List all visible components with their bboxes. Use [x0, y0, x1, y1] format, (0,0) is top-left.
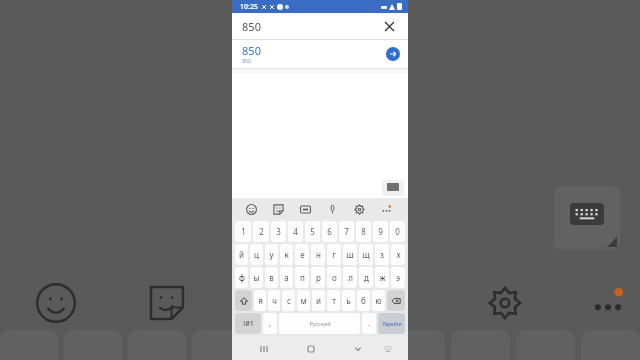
button[interactable]: .	[362, 313, 376, 334]
button[interactable]: 5	[305, 221, 320, 242]
button[interactable]: GIF	[292, 198, 319, 220]
staticText: 3	[276, 226, 281, 237]
staticText: 2	[259, 226, 264, 237]
staticText: л	[348, 272, 353, 283]
button[interactable]: Backspace	[387, 290, 405, 311]
button[interactable]: ь	[342, 290, 355, 311]
button[interactable]: ф	[235, 267, 248, 288]
button[interactable]: Stickers	[265, 198, 292, 220]
button[interactable]: т	[327, 290, 340, 311]
button[interactable]: More options	[373, 198, 400, 220]
staticText: ы	[253, 272, 260, 283]
button[interactable]: Search	[386, 47, 400, 61]
staticText: 10:25	[240, 2, 258, 12]
button[interactable]: ч	[268, 290, 280, 311]
staticText: з	[380, 249, 384, 260]
button[interactable]: 7	[339, 221, 354, 242]
staticText: Перейти	[382, 321, 402, 327]
button[interactable]: й	[235, 244, 248, 265]
staticText: 5	[310, 226, 315, 237]
button[interactable]: ж	[375, 267, 389, 288]
button[interactable]: ц	[250, 244, 263, 265]
staticText: н	[316, 249, 321, 260]
button[interactable]: 850	[242, 13, 398, 39]
button[interactable]: э	[391, 267, 405, 288]
button[interactable]: ы	[250, 267, 263, 288]
staticText: я	[258, 295, 263, 306]
button[interactable]: 0	[390, 221, 405, 242]
staticText: к	[284, 249, 289, 260]
button[interactable]: щ	[359, 244, 373, 265]
button[interactable]: Settings	[346, 198, 373, 220]
button[interactable]: х	[391, 244, 405, 265]
staticText: 850	[242, 19, 261, 34]
button[interactable]: в	[265, 267, 278, 288]
button[interactable]: о	[327, 267, 341, 288]
button[interactable]: 850	[242, 40, 400, 68]
button[interactable]: Clear	[380, 17, 398, 35]
staticText: !#1	[243, 319, 254, 329]
button[interactable]: Shift	[235, 290, 252, 311]
button[interactable]: Home	[301, 339, 321, 359]
button[interactable]: 2	[253, 221, 269, 242]
staticText: 850	[242, 43, 261, 58]
button[interactable]: и	[312, 290, 325, 311]
button[interactable]: н	[311, 244, 325, 265]
staticText: 6	[327, 226, 332, 237]
button[interactable]: !#1	[235, 313, 261, 334]
staticText: 1	[241, 226, 246, 237]
button[interactable]: п	[295, 267, 309, 288]
staticText: щ	[362, 249, 370, 260]
staticText: м	[300, 295, 307, 306]
button[interactable]: е	[295, 244, 309, 265]
button[interactable]: ,	[263, 313, 277, 334]
staticText: 8	[361, 226, 366, 237]
staticText: ш	[346, 249, 354, 260]
button[interactable]: 8	[356, 221, 371, 242]
button[interactable]: у	[265, 244, 278, 265]
staticText: 850	[242, 58, 251, 65]
staticText: ю	[375, 295, 382, 306]
button[interactable]: 3	[271, 221, 286, 242]
button[interactable]: б	[357, 290, 370, 311]
button[interactable]: Русский	[279, 313, 360, 334]
button[interactable]: Emoji	[238, 198, 265, 220]
staticText: 9	[378, 226, 383, 237]
button[interactable]: Recents	[254, 339, 274, 359]
button[interactable]: Resize keyboard	[382, 180, 404, 196]
button[interactable]: Resize keyboard	[554, 186, 620, 250]
button[interactable]: 9	[373, 221, 388, 242]
staticText: с	[287, 295, 291, 306]
button[interactable]: 6	[322, 221, 337, 242]
staticText: ф	[239, 272, 245, 283]
button[interactable]: ш	[343, 244, 357, 265]
staticText: э	[396, 272, 400, 283]
button[interactable]: а	[280, 267, 293, 288]
button[interactable]: л	[343, 267, 357, 288]
staticText: е	[300, 249, 305, 260]
staticText: б	[361, 295, 366, 306]
button[interactable]: 4	[288, 221, 303, 242]
button[interactable]: 1	[235, 221, 251, 242]
staticText: ч	[272, 295, 277, 306]
button[interactable]: Change keyboard	[378, 339, 398, 359]
button[interactable]: к	[280, 244, 293, 265]
staticText: р	[316, 272, 321, 283]
button[interactable]: Перейти	[378, 313, 405, 334]
button[interactable]: Hide keyboard	[348, 339, 368, 359]
staticText: п	[300, 272, 305, 283]
button[interactable]: д	[359, 267, 373, 288]
button[interactable]: з	[375, 244, 389, 265]
button[interactable]: я	[254, 290, 266, 311]
staticText: г	[332, 249, 336, 260]
staticText: д	[364, 272, 369, 283]
staticText: в	[269, 272, 274, 283]
button[interactable]: Voice input	[319, 198, 346, 220]
button[interactable]: р	[311, 267, 325, 288]
staticText: й	[239, 249, 244, 260]
button[interactable]: г	[327, 244, 341, 265]
button[interactable]: ю	[372, 290, 385, 311]
button[interactable]: м	[297, 290, 310, 311]
staticText: ж	[379, 272, 386, 283]
button[interactable]: с	[282, 290, 295, 311]
